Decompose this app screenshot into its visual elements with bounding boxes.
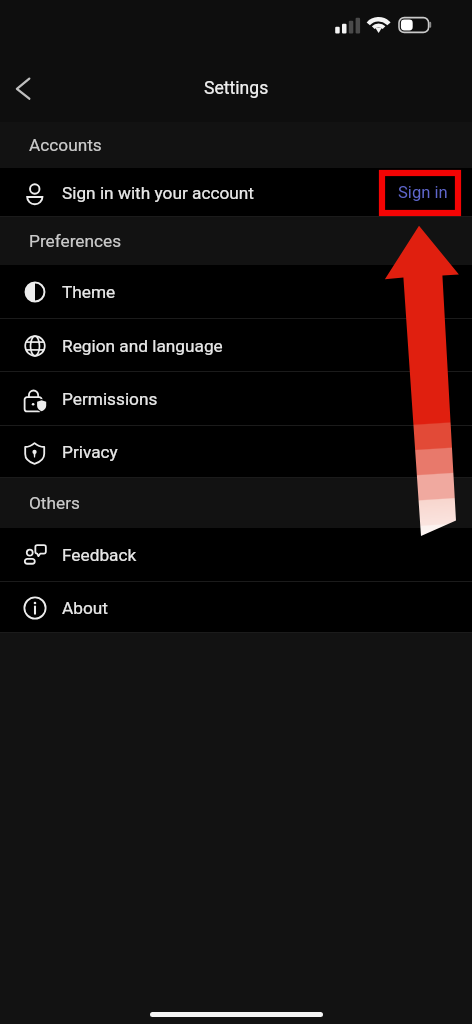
staticText: Preferences: [29, 231, 122, 251]
button[interactable]: Privacy: [0, 426, 472, 478]
staticText: Sign in: [398, 183, 448, 202]
staticText: Sign in with your account: [62, 183, 254, 203]
staticText: Privacy: [62, 442, 118, 462]
staticText: Region and language: [62, 336, 223, 356]
button[interactable]: Theme: [0, 265, 472, 319]
button[interactable]: About: [0, 582, 472, 633]
staticText: Accounts: [29, 135, 102, 155]
staticText: About: [62, 598, 108, 618]
staticText: Settings: [204, 78, 269, 99]
button[interactable]: Feedback: [0, 528, 472, 582]
staticText: Feedback: [62, 545, 137, 565]
button[interactable]: Region and language: [0, 319, 472, 372]
staticText: Permissions: [62, 389, 158, 409]
button[interactable]: Permissions: [0, 372, 472, 426]
staticText: Others: [29, 493, 80, 513]
staticText: Theme: [62, 282, 116, 302]
button[interactable]: Sign in: [391, 177, 455, 208]
button[interactable]: Back: [0, 66, 46, 112]
